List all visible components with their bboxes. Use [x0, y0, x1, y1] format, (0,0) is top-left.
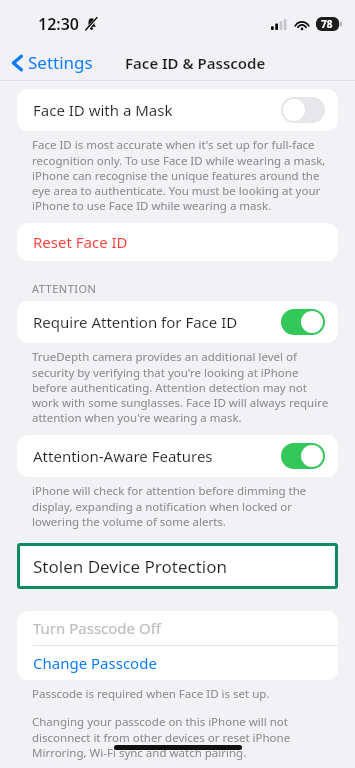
staticText: Turn Passcode Off: [33, 618, 161, 638]
staticText: Stolen Device Protection: [33, 555, 227, 578]
button[interactable]: Require Attention for Face ID: [17, 301, 338, 343]
staticText: TrueDepth camera provides an additional …: [32, 349, 330, 425]
staticText: Changing your passcode on this iPhone wi…: [32, 714, 330, 760]
staticText: 78: [321, 17, 333, 31]
button[interactable]: Attention-Aware Features: [17, 435, 338, 477]
staticText: Change Passcode: [33, 653, 157, 673]
button[interactable]: Turn Passcode Off: [17, 611, 338, 645]
staticText: Face ID with a Mask: [33, 100, 173, 120]
staticText: Face ID & Passcode: [125, 53, 266, 73]
staticText: ATTENTION: [32, 281, 97, 296]
staticText: Passcode is required when Face ID is set…: [32, 686, 270, 702]
staticText: iPhone will check for attention before d…: [32, 483, 330, 529]
staticText: Require Attention for Face ID: [33, 312, 238, 332]
staticText: 12:30: [38, 13, 80, 35]
staticText: Face ID is most accurate when it's set u…: [32, 137, 330, 213]
staticText: Attention-Aware Features: [33, 446, 213, 466]
staticText: Reset Face ID: [33, 232, 128, 252]
button[interactable]: Stolen Device Protection: [17, 543, 338, 589]
staticText: Settings: [28, 51, 93, 74]
button[interactable]: Toggle off: [281, 97, 325, 123]
button[interactable]: Settings: [0, 47, 101, 78]
button[interactable]: Toggle on: [281, 309, 325, 335]
button[interactable]: Toggle on: [281, 443, 325, 469]
button[interactable]: Change Passcode: [17, 646, 338, 680]
button[interactable]: Face ID with a Mask: [17, 89, 338, 131]
button[interactable]: Reset Face ID: [17, 223, 338, 261]
